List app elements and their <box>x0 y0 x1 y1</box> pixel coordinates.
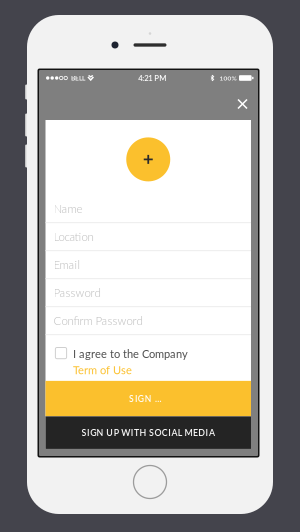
staticText: BELL <box>71 74 85 82</box>
button[interactable]: Email <box>45 251 251 279</box>
staticText: Location <box>53 230 93 243</box>
button[interactable]: Close <box>231 93 253 115</box>
staticText: Term of Use <box>73 363 132 377</box>
staticText: Password <box>53 286 100 299</box>
button[interactable]: SIGN UP WITH SOCIAL MEDIA <box>45 416 251 449</box>
staticText: SIGN UP <box>129 393 167 404</box>
button[interactable]: SIGN UP <box>45 381 251 416</box>
button[interactable]: Location <box>45 223 251 251</box>
button[interactable]: Term of Use <box>73 363 132 377</box>
button[interactable]: Password <box>45 279 251 307</box>
staticText: SIGN UP WITH SOCIAL MEDIA <box>82 427 215 438</box>
button[interactable]: Confirm Password <box>45 307 251 335</box>
button[interactable]: Add photo <box>45 137 251 181</box>
button[interactable]: Name <box>45 195 251 223</box>
button[interactable]: Home <box>130 462 170 502</box>
staticText: 4:21 PM <box>138 73 166 83</box>
staticText: 100% <box>219 74 236 82</box>
button[interactable]: I agree to the Company Term of Use <box>54 347 67 360</box>
staticText: I agree to the Company <box>73 347 188 360</box>
staticText: Email <box>53 258 80 271</box>
staticText: Confirm Password <box>53 314 142 327</box>
staticText: Name <box>53 202 82 215</box>
